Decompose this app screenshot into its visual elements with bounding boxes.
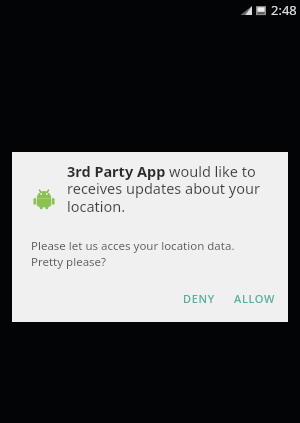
- other: App icon: [33, 188, 55, 210]
- button[interactable]: ALLOW: [227, 286, 283, 311]
- staticText: Please let us acces your location data. …: [31, 238, 235, 269]
- staticText: 2:48: [271, 1, 297, 19]
- staticText: ALLOW: [234, 291, 276, 306]
- button[interactable]: DENY: [176, 286, 222, 311]
- staticText: DENY: [183, 291, 215, 306]
- staticText: 3rd Party App would like to receives upd…: [67, 161, 279, 216]
